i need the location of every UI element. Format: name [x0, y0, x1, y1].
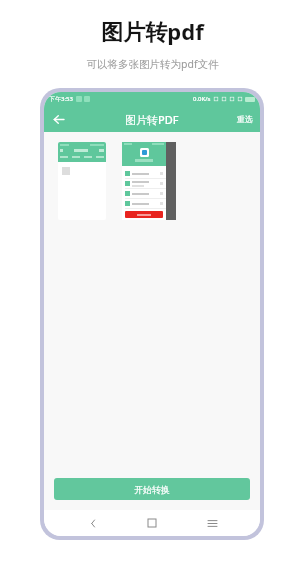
button[interactable]	[122, 142, 176, 220]
staticText: 图片转PDF	[125, 112, 179, 127]
staticText: 可以将多张图片转为pdf文件	[86, 57, 219, 71]
button[interactable]: Home	[141, 512, 163, 534]
button[interactable]: 重选	[230, 109, 260, 129]
staticText: 0.0K/s	[193, 95, 211, 103]
button[interactable]: 开始转换	[54, 478, 250, 500]
staticText: 图片转pdf	[101, 16, 204, 46]
button[interactable]: Recents	[201, 512, 223, 534]
button[interactable]: Back	[82, 512, 104, 534]
button[interactable]: Back	[48, 109, 68, 129]
staticText: 重选	[237, 114, 253, 124]
button[interactable]	[58, 142, 106, 220]
staticText: 下午3:53	[49, 95, 73, 103]
staticText: 开始转换	[134, 484, 170, 495]
